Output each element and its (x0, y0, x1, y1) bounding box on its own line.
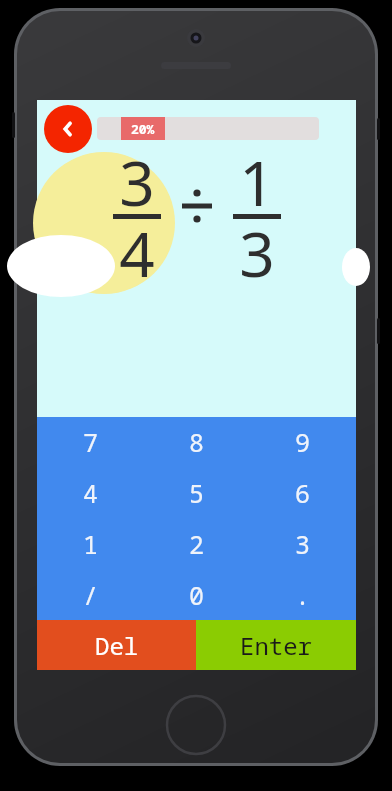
button[interactable]: 6 (250, 467, 356, 518)
staticText: 8 (189, 425, 205, 459)
staticText: 3 (295, 527, 311, 561)
button[interactable]: 7 (37, 417, 144, 467)
staticText: 4 (119, 211, 155, 295)
staticText: 6 (295, 476, 311, 510)
staticText: 7 (83, 425, 99, 459)
staticText: 1 (83, 527, 99, 561)
staticText: 1 (239, 140, 275, 224)
staticText: 3 (239, 211, 275, 295)
staticText: 2 (189, 527, 205, 561)
button[interactable]: 9 (250, 417, 356, 467)
button[interactable]: 4 (37, 467, 144, 518)
button[interactable]: 8 (144, 417, 250, 467)
button[interactable]: 3 (250, 518, 356, 569)
button[interactable]: 0 (144, 569, 250, 620)
button[interactable]: 5 (144, 467, 250, 518)
button[interactable]: 1 (37, 518, 144, 569)
staticText: 3 (119, 140, 155, 224)
button[interactable]: Back (44, 105, 92, 153)
staticText: 0 (189, 578, 205, 612)
staticText: 5 (189, 476, 205, 510)
staticText: 20% (131, 120, 155, 138)
button[interactable]: 2 (144, 518, 250, 569)
staticText: 9 (295, 425, 311, 459)
button[interactable]: Enter (196, 620, 356, 670)
button[interactable]: . (250, 569, 356, 620)
staticText: / (83, 578, 99, 612)
staticText: . (295, 578, 311, 612)
button[interactable]: / (37, 569, 144, 620)
staticText: Del (95, 629, 139, 662)
staticText: 4 (83, 476, 99, 510)
button[interactable]: Del (37, 620, 196, 670)
staticText: Enter (240, 629, 312, 662)
